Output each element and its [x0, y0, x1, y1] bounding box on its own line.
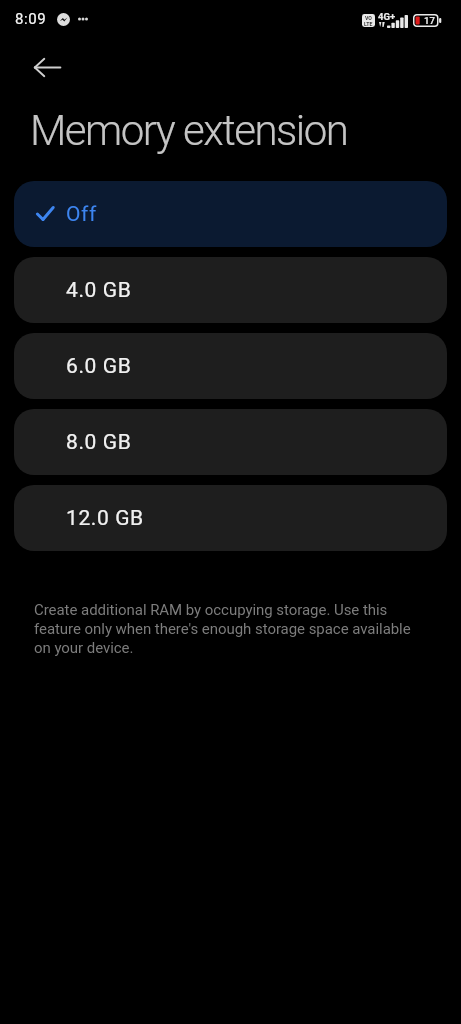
staticText: 17: [424, 15, 435, 26]
staticText: LTE: [364, 21, 373, 27]
staticText: 12.0 GB: [66, 506, 144, 531]
staticText: 6.0 GB: [66, 354, 132, 379]
staticText: 8.0 GB: [66, 430, 132, 455]
staticText: Create additional RAM by occupying stora…: [34, 601, 426, 657]
button[interactable]: 4.0 GB: [14, 257, 447, 323]
staticText: 8:09: [15, 10, 47, 28]
staticText: VO: [365, 15, 372, 21]
staticText: 4.0 GB: [66, 278, 132, 303]
button[interactable]: 12.0 GB: [14, 485, 447, 551]
button[interactable]: Back: [22, 43, 74, 91]
staticText: 4G+: [378, 11, 396, 22]
button[interactable]: 6.0 GB: [14, 333, 447, 399]
staticText: Off: [66, 202, 97, 227]
staticText: Memory extension: [30, 106, 348, 155]
button[interactable]: 8.0 GB: [14, 409, 447, 475]
button[interactable]: Off: [14, 181, 447, 247]
